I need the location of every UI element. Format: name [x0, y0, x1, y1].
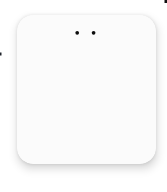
button[interactable]: Card [17, 15, 156, 164]
